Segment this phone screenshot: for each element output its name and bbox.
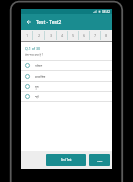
staticText: नहीं [35,95,39,99]
button[interactable]: 1 [21,30,33,41]
staticText: 5 [72,33,75,38]
button[interactable]: नहीं [21,91,112,102]
staticText: बुरा [35,85,39,89]
staticText: 1 [26,33,29,38]
staticText: सामाजिक [35,75,46,79]
staticText: 8 [105,33,108,38]
staticText: End Test [61,158,72,162]
button[interactable]: 2 [33,30,45,41]
staticText: Next [97,159,103,162]
staticText: 6 [83,33,86,38]
staticText: 3 [50,33,53,38]
staticText: 7 [94,33,97,38]
button[interactable]: 5 [68,30,79,41]
button[interactable]: 4 [57,30,68,41]
staticText: Test - Test2 [36,19,62,26]
staticText: 4 [61,33,64,38]
button[interactable]: सामाजिक [21,71,112,82]
staticText: 08:32 [102,10,111,14]
button[interactable]: Next [89,154,110,166]
button[interactable]: 6 [79,30,90,41]
button[interactable]: 3 [45,30,57,41]
staticText: Q.1 of 30 [25,46,41,51]
button[interactable]: End Test [46,154,86,166]
staticText: परिवार [35,64,43,68]
button[interactable]: परिवार [21,60,112,71]
button[interactable]: Back [21,14,36,30]
button[interactable]: बुरा [21,81,112,92]
button[interactable]: 8 [101,30,112,41]
staticText: 2 [38,33,41,38]
staticText: मेरा नाम क्या है ? [25,53,44,57]
button[interactable]: 7 [90,30,101,41]
